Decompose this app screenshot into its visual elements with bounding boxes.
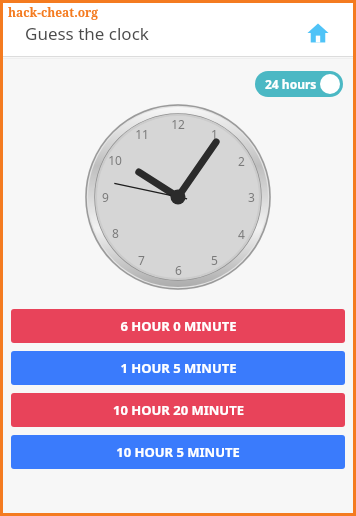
staticText: 4: [238, 226, 245, 242]
staticText: 5: [211, 252, 218, 268]
staticText: 10 HOUR 5 MINUTE: [116, 443, 240, 461]
button[interactable]: 24 hours: [255, 71, 343, 97]
staticText: 3: [248, 189, 255, 205]
staticText: 11: [135, 126, 149, 142]
button[interactable]: 6 HOUR 0 MINUTE: [11, 309, 345, 343]
staticText: 7: [138, 252, 145, 268]
button[interactable]: 10 HOUR 20 MINUTE: [11, 393, 345, 427]
staticText: 9: [102, 189, 109, 205]
staticText: 10 HOUR 20 MINUTE: [113, 401, 244, 419]
staticText: 12: [171, 116, 185, 132]
staticText: Guess the clock: [25, 22, 149, 45]
staticText: 6: [175, 262, 182, 278]
button[interactable]: 10 HOUR 5 MINUTE: [11, 435, 345, 469]
staticText: 6 HOUR 0 MINUTE: [120, 317, 237, 335]
staticText: hack-cheat.org: [8, 4, 99, 20]
staticText: 1: [211, 126, 218, 142]
staticText: 8: [112, 225, 119, 241]
staticText: 10: [108, 152, 122, 168]
button[interactable]: 1 HOUR 5 MINUTE: [11, 351, 345, 385]
staticText: 1 HOUR 5 MINUTE: [120, 359, 237, 377]
staticText: 24 hours: [265, 76, 317, 92]
staticText: 2: [238, 153, 245, 169]
button[interactable]: Home: [303, 18, 333, 48]
